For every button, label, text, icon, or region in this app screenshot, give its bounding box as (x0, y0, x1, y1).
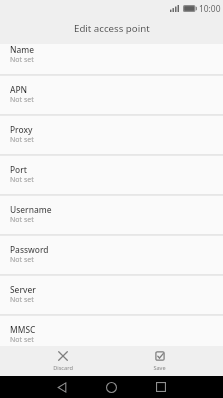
staticText: Name (10, 44, 35, 55)
button[interactable]: Proxy (0, 114, 223, 154)
button[interactable]: Save (111, 346, 208, 372)
button[interactable]: Home (86, 382, 136, 393)
staticText: Save (153, 364, 166, 372)
button[interactable]: Discard (15, 346, 111, 372)
staticText: Not set (10, 95, 34, 105)
staticText: APN (10, 84, 28, 95)
staticText: Not set (10, 175, 34, 185)
staticText: Not set (10, 215, 34, 225)
staticText: Server (10, 284, 36, 295)
button[interactable]: Username (0, 194, 223, 234)
staticText: Not set (10, 55, 34, 65)
staticText: Edit access point (74, 22, 150, 35)
staticText: MMSC (10, 324, 36, 335)
staticText: Not set (10, 255, 34, 265)
button[interactable]: Server (0, 274, 223, 314)
staticText: Discard (53, 364, 73, 372)
staticText: Proxy (10, 124, 33, 135)
button[interactable]: Port (0, 154, 223, 194)
button[interactable]: Name (0, 44, 223, 74)
staticText: Username (10, 204, 52, 215)
button[interactable]: APN (0, 74, 223, 114)
staticText: Not set (10, 135, 34, 145)
staticText: Not set (10, 295, 34, 305)
staticText: Port (10, 164, 28, 175)
staticText: Password (10, 244, 49, 255)
staticText: Not set (10, 335, 34, 345)
button[interactable]: Back (37, 382, 86, 393)
button[interactable]: MMSC (0, 314, 223, 346)
button[interactable]: Password (0, 234, 223, 274)
button[interactable]: Recents (136, 382, 186, 392)
staticText: 10:00 (199, 3, 221, 14)
